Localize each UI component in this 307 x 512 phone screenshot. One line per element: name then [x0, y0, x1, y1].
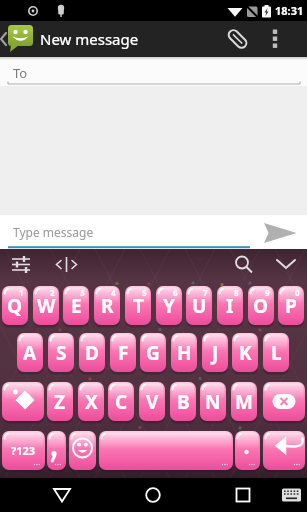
button[interactable]: O [248, 286, 274, 325]
button[interactable] [47, 431, 66, 470]
button[interactable]: L [263, 333, 289, 372]
button[interactable]: U [186, 286, 212, 325]
button[interactable]: C [108, 382, 134, 421]
button[interactable]: N [200, 382, 226, 421]
staticText: 9 [265, 287, 270, 298]
button[interactable] [2, 382, 44, 421]
staticText: 0 [295, 287, 300, 298]
staticText: J [212, 340, 219, 366]
staticText: 4 [111, 287, 116, 298]
button[interactable] [69, 431, 96, 470]
button[interactable]: Q [2, 286, 28, 325]
button[interactable] [263, 382, 305, 421]
staticText: To [13, 64, 28, 82]
staticText: V [146, 389, 159, 415]
button[interactable]: G [140, 333, 166, 372]
button[interactable]: V [139, 382, 165, 421]
button[interactable]: To [0, 57, 307, 86]
button[interactable]: M [231, 382, 257, 421]
staticText: G [146, 340, 160, 366]
staticText: 3 [80, 287, 85, 298]
staticText: E [71, 293, 82, 319]
staticText: Q [7, 293, 23, 319]
staticText: 5 [142, 287, 147, 298]
staticText: M [235, 389, 253, 415]
button[interactable] [178, 478, 267, 512]
button[interactable]: Y [156, 286, 182, 325]
staticText: 8 [234, 287, 239, 298]
staticText: U [192, 293, 207, 319]
button[interactable]: T [125, 286, 151, 325]
staticText: 1 [19, 287, 24, 298]
button[interactable]: X [78, 382, 104, 421]
button[interactable] [0, 21, 36, 57]
staticText: L [271, 340, 282, 366]
button[interactable]: E [63, 286, 89, 325]
button[interactable] [267, 478, 307, 512]
button[interactable]: B [170, 382, 196, 421]
staticText: Y [163, 293, 175, 319]
staticText: W [37, 293, 56, 319]
staticText: B [177, 389, 190, 415]
button[interactable] [0, 478, 89, 512]
button[interactable]: H [171, 333, 197, 372]
button[interactable]: Type message [0, 215, 307, 249]
staticText: F [118, 340, 129, 366]
button[interactable] [89, 478, 178, 512]
button[interactable]: ?123 [2, 431, 45, 470]
staticText: H [177, 340, 192, 366]
staticText: O [253, 293, 269, 319]
staticText: New message [40, 29, 139, 49]
staticText: 2 [50, 287, 55, 298]
button[interactable]: F [110, 333, 136, 372]
button[interactable]: W [33, 286, 59, 325]
staticText: N [205, 389, 221, 415]
staticText: T [133, 293, 144, 319]
staticText: 18:31 [275, 3, 304, 18]
button[interactable]: J [202, 333, 228, 372]
button[interactable]: K [232, 333, 258, 372]
button[interactable]: I [217, 286, 243, 325]
staticText: K [239, 340, 252, 366]
button[interactable] [263, 431, 305, 470]
staticText: 7 [203, 287, 208, 298]
staticText: X [85, 389, 98, 415]
staticText: I [226, 293, 234, 319]
button[interactable]: Z [47, 382, 73, 421]
staticText: A [23, 340, 37, 366]
staticText: P [285, 293, 297, 319]
button[interactable] [235, 431, 260, 470]
staticText: Type message [13, 224, 94, 240]
button[interactable] [237, 21, 277, 57]
button[interactable]: A [17, 333, 43, 372]
button[interactable]: R [94, 286, 120, 325]
staticText: C [115, 389, 128, 415]
button[interactable] [0, 249, 307, 478]
staticText: 6 [173, 287, 178, 298]
button[interactable] [277, 21, 307, 57]
staticText: D [85, 340, 99, 366]
button[interactable]: D [79, 333, 105, 372]
staticText: R [101, 293, 114, 319]
button[interactable]: S [48, 333, 74, 372]
button[interactable] [99, 431, 233, 470]
staticText: ?123 [11, 443, 36, 458]
staticText: Z [54, 389, 66, 415]
staticText: S [56, 340, 67, 366]
button[interactable]: P [278, 286, 304, 325]
